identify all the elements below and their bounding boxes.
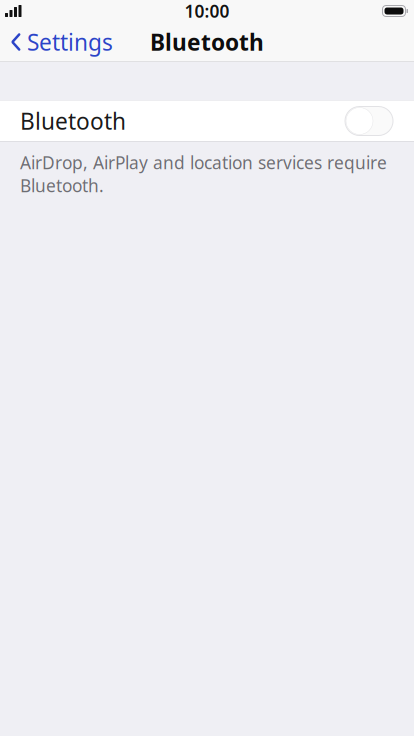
staticText: AirDrop, AirPlay and location services r… <box>20 151 387 197</box>
staticText: Bluetooth <box>150 27 264 57</box>
button[interactable]: Settings <box>0 22 121 62</box>
staticText: Settings <box>27 27 113 57</box>
button[interactable]: Bluetooth <box>0 100 414 141</box>
staticText: Bluetooth <box>20 106 126 136</box>
staticText: 10:00 <box>184 0 229 22</box>
